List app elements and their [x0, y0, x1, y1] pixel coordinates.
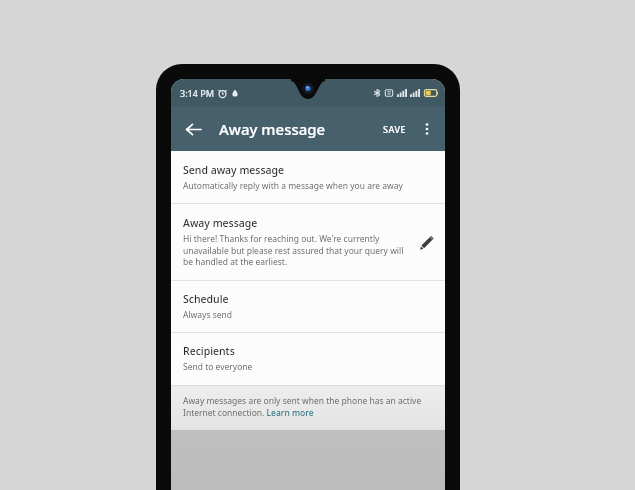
button[interactable]: Send away message: [171, 151, 445, 203]
button[interactable]: Back: [177, 113, 209, 145]
button[interactable]: Schedule: [171, 281, 445, 332]
staticText: Away message: [219, 119, 326, 139]
staticText: Automatically reply with a message when …: [183, 180, 403, 192]
button[interactable]: Away message: [171, 204, 445, 280]
staticText: SAVE: [383, 123, 407, 135]
staticText: Send away message: [183, 163, 285, 177]
staticText: Schedule: [183, 292, 229, 306]
button[interactable]: Edit away message: [413, 229, 439, 255]
staticText: Recipients: [183, 344, 235, 358]
staticText: 3:14 PM: [180, 87, 214, 99]
staticText: Away message: [183, 216, 258, 230]
staticText: Send to everyone: [183, 361, 253, 373]
button[interactable]: SAVE: [378, 118, 412, 140]
button[interactable]: More options: [414, 116, 440, 142]
staticText: Away messages are only sent when the pho…: [183, 395, 431, 419]
staticText: Hi there! Thanks for reaching out. We're…: [183, 233, 407, 268]
staticText: Always send: [183, 309, 233, 321]
button[interactable]: Recipients: [171, 333, 445, 385]
